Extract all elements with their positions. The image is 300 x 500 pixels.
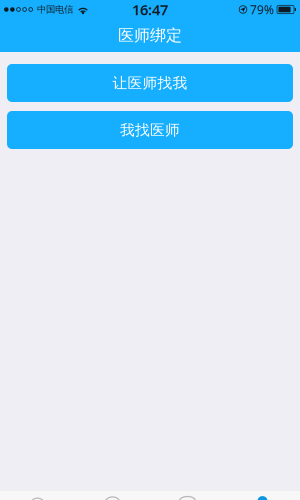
- staticText: 16:47: [132, 0, 168, 19]
- button[interactable]: 首页: [0, 490, 75, 500]
- staticText: 让医师找我: [112, 74, 187, 92]
- staticText: 79%: [250, 1, 274, 17]
- button[interactable]: 让医师找我: [7, 64, 293, 102]
- staticText: 我找医师: [120, 121, 180, 139]
- button[interactable]: 消息: [150, 490, 225, 500]
- staticText: 医师绑定: [118, 26, 182, 45]
- button[interactable]: 医师: [75, 490, 150, 500]
- button[interactable]: 我找医师: [7, 111, 293, 149]
- staticText: 中国电信: [37, 4, 73, 15]
- button[interactable]: 我的: [225, 490, 300, 500]
